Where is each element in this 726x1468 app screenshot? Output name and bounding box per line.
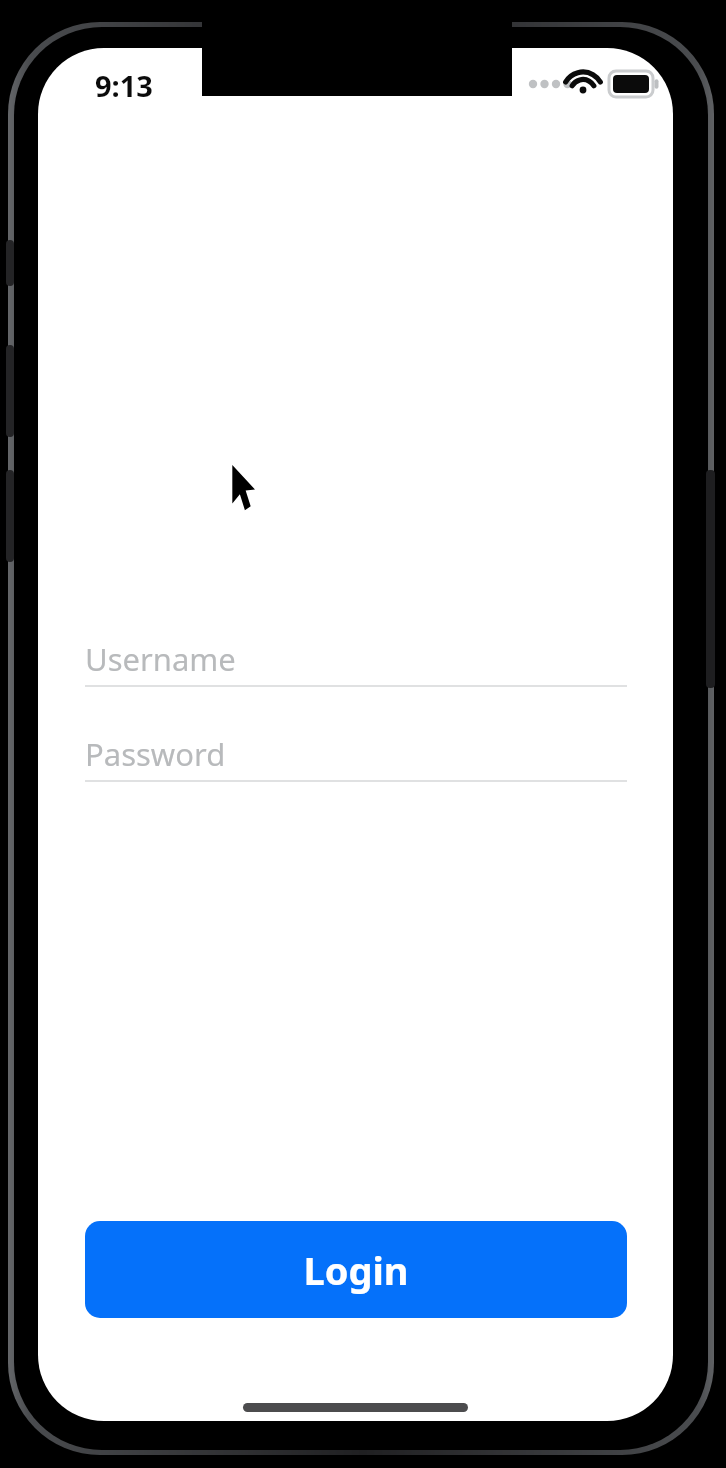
other: Pointer	[228, 462, 264, 514]
button[interactable]: Password	[85, 725, 627, 783]
staticText: Login	[303, 1244, 409, 1296]
button[interactable]: Username	[85, 630, 627, 688]
staticText: 9:13	[95, 66, 153, 105]
staticText: Password	[85, 733, 226, 775]
staticText: Username	[85, 638, 236, 680]
button[interactable]: Login	[85, 1221, 627, 1318]
